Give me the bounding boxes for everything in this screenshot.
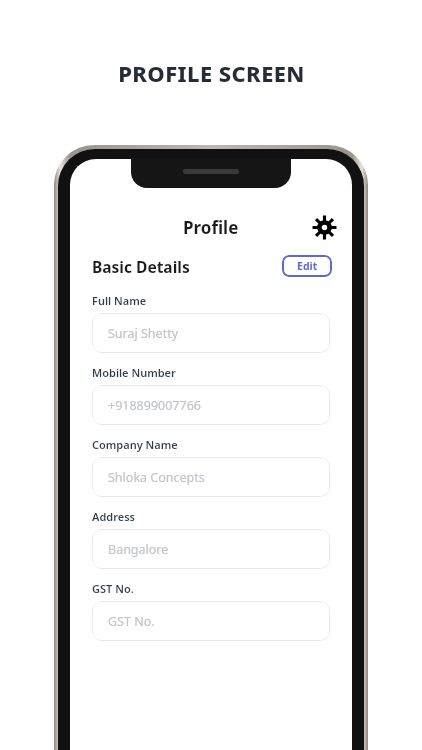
staticText: Basic Details xyxy=(92,256,190,277)
staticText: Full Name xyxy=(92,293,147,308)
staticText: GST No. xyxy=(92,581,134,596)
staticText: Mobile Number xyxy=(92,365,176,380)
staticText: Suraj Shetty xyxy=(108,325,179,342)
button[interactable]: Edit xyxy=(282,255,332,277)
staticText: Shloka Concepts xyxy=(108,469,205,486)
button[interactable]: GST No. xyxy=(92,601,330,641)
button[interactable]: Bangalore xyxy=(92,529,330,569)
staticText: GST No. xyxy=(108,613,155,630)
button[interactable]: Settings xyxy=(308,211,340,243)
staticText: Edit xyxy=(297,259,318,273)
staticText: PROFILE SCREEN xyxy=(118,58,305,88)
button[interactable]: Suraj Shetty xyxy=(92,313,330,353)
staticText: +918899007766 xyxy=(108,397,201,414)
button[interactable]: Shloka Concepts xyxy=(92,457,330,497)
staticText: Company Name xyxy=(92,437,178,452)
staticText: Bangalore xyxy=(108,541,169,558)
staticText: Address xyxy=(92,509,135,524)
staticText: Profile xyxy=(183,216,239,239)
button[interactable]: +918899007766 xyxy=(92,385,330,425)
